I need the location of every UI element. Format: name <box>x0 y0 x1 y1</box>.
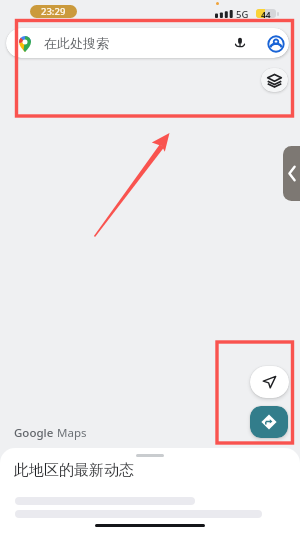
staticText: 23:29 <box>41 5 66 18</box>
button[interactable]: 在此处搜索 <box>6 28 289 58</box>
button[interactable]: Account <box>267 35 285 53</box>
button[interactable]: Voice search <box>232 35 248 51</box>
staticText: 此地区的最新动态 <box>14 461 134 480</box>
button[interactable]: Expand side panel <box>283 146 300 201</box>
staticText: Maps <box>57 425 87 441</box>
staticText: Google <box>14 425 54 441</box>
staticText: 44 <box>261 9 271 18</box>
button[interactable]: Directions <box>250 406 288 438</box>
button[interactable]: My location <box>250 366 289 398</box>
staticText: 在此处搜索 <box>44 35 109 51</box>
button[interactable]: Map layers <box>261 68 288 92</box>
staticText: 5G <box>236 8 249 21</box>
